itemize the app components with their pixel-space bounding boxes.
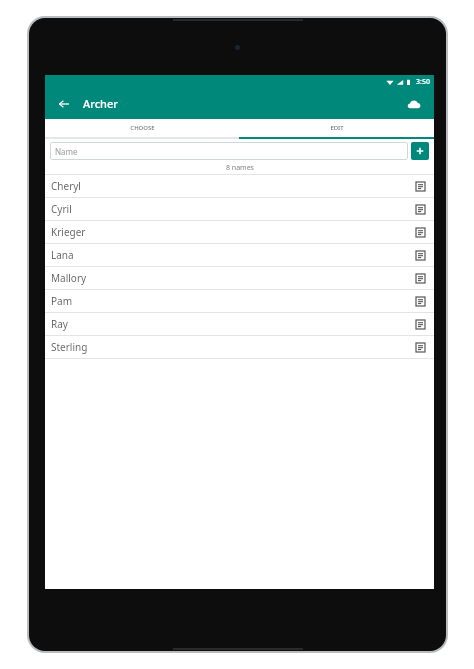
button[interactable]: Cheryl — [45, 175, 434, 197]
button[interactable]: Notes for Cheryl — [413, 179, 427, 193]
button[interactable]: Back — [53, 93, 75, 115]
button[interactable]: Pam — [45, 290, 434, 312]
staticText: Pam — [51, 294, 73, 308]
button[interactable]: Notes for Cyril — [413, 202, 427, 216]
staticText: Krieger — [51, 225, 86, 239]
button[interactable]: Krieger — [45, 221, 434, 243]
staticText: 3:50 — [416, 77, 430, 87]
button[interactable]: Notes for Krieger — [413, 225, 427, 239]
button[interactable]: Upload to cloud — [402, 92, 426, 116]
staticText: Ray — [51, 317, 68, 331]
staticText: Name — [55, 146, 78, 157]
button[interactable]: Sterling — [45, 336, 434, 358]
staticText: Sterling — [51, 340, 88, 354]
staticText: Lana — [51, 248, 74, 262]
button[interactable]: Notes for Mallory — [413, 271, 427, 285]
button[interactable]: Notes for Lana — [413, 248, 427, 262]
staticText: 8 names — [226, 163, 254, 173]
button[interactable]: Ray — [45, 313, 434, 335]
staticText: CHOOSE — [130, 124, 155, 132]
button[interactable]: EDIT — [239, 119, 434, 137]
staticText: Mallory — [51, 271, 87, 285]
button[interactable]: Lana — [45, 244, 434, 266]
button[interactable]: CHOOSE — [45, 119, 239, 137]
button[interactable]: Mallory — [45, 267, 434, 289]
button[interactable]: Cyril — [45, 198, 434, 220]
button[interactable]: Notes for Pam — [413, 294, 427, 308]
staticText: Cyril — [51, 202, 72, 216]
staticText: Cheryl — [51, 179, 81, 193]
button[interactable]: Notes for Ray — [413, 317, 427, 331]
button[interactable]: Add name — [411, 142, 429, 160]
staticText: Archer — [83, 96, 118, 111]
button[interactable]: Notes for Sterling — [413, 340, 427, 354]
button[interactable]: Name — [50, 142, 408, 160]
staticText: EDIT — [330, 124, 344, 132]
